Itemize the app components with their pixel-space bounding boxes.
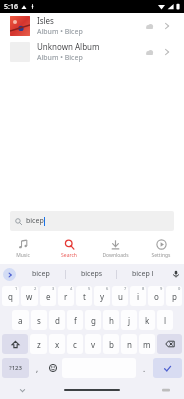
button[interactable]: biceps xyxy=(66,264,117,284)
staticText: 2 xyxy=(34,286,37,291)
button[interactable]: t xyxy=(76,286,92,306)
staticText: 9 xyxy=(160,286,163,291)
staticText: Album • Bicep xyxy=(37,53,83,63)
staticText: bicep l xyxy=(132,269,154,279)
staticText: i xyxy=(137,291,140,302)
staticText: b xyxy=(109,339,114,350)
staticText: m xyxy=(143,339,151,350)
button[interactable]: a xyxy=(12,310,29,330)
button[interactable]: m xyxy=(139,334,155,354)
button[interactable]: Emoji xyxy=(46,358,60,378)
staticText: l xyxy=(164,315,167,326)
button[interactable]: p xyxy=(166,286,182,306)
button[interactable]: e xyxy=(40,286,56,306)
staticText: Search xyxy=(61,252,77,259)
staticText: u xyxy=(118,291,123,302)
button[interactable]: Shift xyxy=(2,334,28,354)
button[interactable]: q xyxy=(2,286,19,306)
button[interactable]: More xyxy=(160,45,174,59)
staticText: c xyxy=(73,339,77,350)
button[interactable]: ?123 xyxy=(2,358,29,378)
button[interactable]: g xyxy=(85,310,101,330)
staticText: q xyxy=(8,291,13,302)
button[interactable]: b xyxy=(103,334,119,354)
staticText: Downloads xyxy=(102,252,129,259)
button[interactable]: o xyxy=(148,286,164,306)
staticText: e xyxy=(46,291,51,302)
button[interactable]: Isles xyxy=(0,13,184,39)
staticText: j xyxy=(128,315,131,326)
staticText: 6 xyxy=(106,286,109,291)
button[interactable]: . xyxy=(138,358,151,378)
staticText: 5 xyxy=(88,286,91,291)
button[interactable]: Enter xyxy=(153,358,182,378)
button[interactable]: bicep xyxy=(10,211,174,231)
staticText: biceps xyxy=(81,269,103,279)
staticText: 4 xyxy=(70,286,73,291)
button[interactable]: Download xyxy=(142,19,156,33)
button[interactable]: Backspace xyxy=(157,334,182,354)
button[interactable]: f xyxy=(67,310,83,330)
button[interactable]: y xyxy=(94,286,110,306)
staticText: f xyxy=(74,315,77,326)
staticText: Settings xyxy=(151,252,171,259)
staticText: r xyxy=(64,291,68,302)
staticText: z xyxy=(37,339,41,350)
staticText: bicep xyxy=(26,216,44,226)
staticText: bicep xyxy=(32,269,50,279)
button[interactable]: x xyxy=(49,334,65,354)
button[interactable]: d xyxy=(49,310,65,330)
staticText: y xyxy=(100,291,105,302)
button[interactable]: Unknown Album xyxy=(0,39,184,65)
button[interactable]: Expand suggestions xyxy=(3,268,16,281)
button[interactable]: k xyxy=(139,310,155,330)
button[interactable]: Downloads xyxy=(92,234,138,264)
button[interactable]: bicep xyxy=(16,264,66,284)
staticText: 8 xyxy=(142,286,145,291)
staticText: 0 xyxy=(178,286,181,291)
staticText: n xyxy=(127,339,132,350)
staticText: Isles xyxy=(37,15,54,26)
button[interactable]: Settings xyxy=(138,234,184,264)
staticText: Music xyxy=(16,252,30,259)
button[interactable]: l xyxy=(157,310,173,330)
button[interactable]: More xyxy=(160,19,174,33)
staticText: 3 xyxy=(52,286,55,291)
button[interactable]: s xyxy=(31,310,47,330)
button[interactable]: Switch keyboard xyxy=(160,384,172,396)
button[interactable]: u xyxy=(112,286,128,306)
button[interactable]: Download xyxy=(142,45,156,59)
staticText: Album • Bicep xyxy=(37,27,83,37)
button[interactable]: v xyxy=(85,334,101,354)
staticText: x xyxy=(55,339,60,350)
staticText: w xyxy=(26,291,33,302)
button[interactable]: Hide keyboard xyxy=(16,384,28,396)
button[interactable]: c xyxy=(67,334,83,354)
button[interactable]: i xyxy=(130,286,146,306)
staticText: k xyxy=(145,315,150,326)
staticText: o xyxy=(154,291,159,302)
button[interactable]: n xyxy=(121,334,137,354)
button[interactable]: Voice input xyxy=(168,264,184,284)
staticText: 5:16 xyxy=(4,2,18,12)
button[interactable]: r xyxy=(58,286,74,306)
staticText: 7 xyxy=(124,286,127,291)
staticText: d xyxy=(55,315,60,326)
staticText: a xyxy=(18,315,23,326)
staticText: h xyxy=(109,315,114,326)
button[interactable]: Music xyxy=(0,234,46,264)
staticText: ?123 xyxy=(9,364,22,372)
button[interactable]: Search xyxy=(46,234,92,264)
staticText: s xyxy=(37,315,41,326)
staticText: 1 xyxy=(15,286,18,291)
button[interactable]: j xyxy=(121,310,137,330)
staticText: Unknown Album xyxy=(37,41,100,52)
button[interactable]: w xyxy=(21,286,38,306)
button[interactable]: bicep l xyxy=(117,264,168,284)
button[interactable]: , xyxy=(31,358,44,378)
button[interactable]: h xyxy=(103,310,119,330)
staticText: . xyxy=(143,363,146,374)
staticText: t xyxy=(83,291,86,302)
button[interactable]: z xyxy=(30,334,47,354)
